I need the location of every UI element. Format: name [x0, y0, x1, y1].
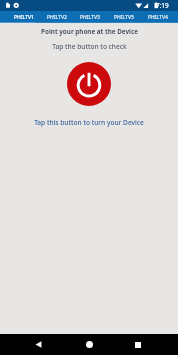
staticText: PHILTV4: [148, 14, 168, 21]
button[interactable]: Power: [67, 62, 111, 106]
staticText: Tap the button to check: [52, 42, 127, 51]
button[interactable]: PHILTV3: [73, 11, 107, 23]
button[interactable]: PHILTV2: [40, 11, 73, 23]
button[interactable]: Back: [14, 334, 63, 355]
button[interactable]: PHILTV5: [107, 11, 141, 23]
staticText: PHILTV1: [14, 14, 34, 21]
staticText: PHILTV2: [47, 14, 67, 21]
button[interactable]: PHILTV1: [7, 11, 40, 23]
staticText: PHILTV3: [80, 14, 100, 21]
staticText: PHILTV5: [114, 14, 134, 21]
staticText: 7:19: [156, 1, 169, 10]
staticText: Tap this button to turn your Device: [34, 118, 144, 127]
button[interactable]: Recents: [113, 334, 162, 355]
button[interactable]: Home: [65, 334, 114, 355]
button[interactable]: PHILTV4: [141, 11, 175, 23]
staticText: Point your phone at the Device: [41, 27, 138, 36]
